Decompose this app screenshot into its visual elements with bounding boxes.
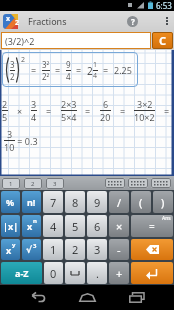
staticText: 2: [87, 64, 93, 78]
staticText: √: [26, 245, 33, 255]
button[interactable]: 9: [87, 191, 107, 213]
button[interactable]: 8: [65, 191, 85, 213]
button[interactable]: ): [153, 191, 173, 213]
staticText: 0: [50, 266, 57, 281]
staticText: =: [164, 105, 170, 117]
staticText: +: [116, 266, 123, 281]
staticText: 5×4: [61, 111, 77, 123]
staticText: 5: [72, 219, 79, 234]
staticText: 2: [21, 55, 26, 65]
button[interactable]: .: [87, 262, 107, 284]
button[interactable]: [131, 262, 173, 284]
staticText: (3/2)^2: [5, 35, 35, 47]
button[interactable]: 4: [43, 215, 63, 237]
button[interactable]: C: [152, 32, 173, 49]
staticText: =: [46, 105, 52, 117]
button[interactable]: +: [109, 262, 129, 284]
button[interactable]: √: [22, 239, 41, 260]
button[interactable]: /: [109, 191, 129, 213]
staticText: |x|: [3, 220, 19, 232]
staticText: y: [12, 241, 16, 249]
staticText: =: [85, 105, 91, 117]
button[interactable]: x: [1, 239, 20, 260]
staticText: =: [120, 105, 126, 117]
button[interactable]: (3/2)^2: [1, 32, 151, 49]
staticText: 6: [103, 98, 109, 110]
staticText: (: [139, 195, 143, 210]
staticText: /: [117, 195, 122, 210]
staticText: 1: [9, 180, 13, 188]
button[interactable]: a-Z: [1, 262, 42, 284]
staticText: n: [33, 217, 37, 225]
staticText: 9: [66, 59, 71, 70]
staticText: a-Z: [15, 267, 29, 279]
staticText: 4: [50, 219, 57, 234]
staticText: -: [117, 242, 121, 257]
staticText: 3: [7, 128, 13, 140]
staticText: 3: [10, 59, 15, 70]
button[interactable]: [131, 239, 173, 260]
staticText: 9: [94, 195, 101, 210]
staticText: Ans: [162, 215, 171, 222]
staticText: .: [96, 266, 99, 281]
button[interactable]: [70, 285, 104, 310]
button[interactable]: [166, 17, 168, 25]
button[interactable]: |x|: [1, 215, 20, 237]
staticText: x: [6, 14, 11, 24]
button[interactable]: 1: [43, 239, 63, 260]
staticText: = 0.3: [15, 135, 38, 147]
button[interactable]: [151, 178, 171, 188]
button[interactable]: 2: [65, 239, 85, 260]
button[interactable]: -: [109, 239, 129, 260]
staticText: =: [31, 64, 37, 76]
staticText: ?: [131, 16, 135, 27]
staticText: 2: [10, 71, 15, 82]
staticText: 6: [94, 219, 101, 234]
staticText: 1: [93, 60, 98, 70]
staticText: 3: [33, 242, 37, 250]
button[interactable]: %: [1, 191, 20, 213]
staticText: ×: [116, 219, 123, 234]
button[interactable]: [20, 285, 54, 310]
staticText: 2: [2, 98, 8, 110]
button[interactable]: ?: [127, 16, 138, 27]
button[interactable]: [105, 178, 125, 188]
button[interactable]: [120, 285, 154, 310]
staticText: 20: [100, 111, 111, 123]
staticText: 3: [94, 242, 101, 257]
staticText: 2×3: [61, 98, 77, 110]
button[interactable]: 7: [43, 191, 63, 213]
staticText: 2²: [42, 71, 50, 82]
button[interactable]: x: [22, 215, 41, 237]
staticText: 2: [72, 242, 79, 257]
button[interactable]: 3: [46, 178, 64, 189]
staticText: =: [55, 64, 61, 76]
staticText: =: [149, 219, 155, 233]
staticText: 3: [31, 98, 37, 110]
staticText: 7: [50, 195, 57, 210]
button[interactable]: 2: [24, 178, 42, 189]
button[interactable]: 6: [87, 215, 107, 237]
staticText: 2: [31, 180, 35, 188]
button[interactable]: [65, 262, 85, 284]
button[interactable]: 5: [65, 215, 85, 237]
button[interactable]: [128, 178, 148, 188]
staticText: 3: [53, 180, 57, 188]
button[interactable]: 0: [44, 262, 63, 284]
staticText: ×: [17, 105, 23, 117]
button[interactable]: (: [131, 191, 151, 213]
button[interactable]: =: [131, 215, 173, 237]
staticText: %: [6, 196, 15, 208]
button[interactable]: 3: [87, 239, 107, 260]
staticText: 5: [2, 111, 8, 123]
button[interactable]: 3: [2, 52, 138, 87]
button[interactable]: n!: [22, 191, 41, 213]
staticText: n!: [27, 196, 36, 208]
staticText: 8: [72, 195, 79, 210]
staticText: 10×2: [134, 111, 155, 123]
staticText: ): [161, 195, 165, 210]
staticText: x: [27, 220, 33, 232]
button[interactable]: 1: [2, 178, 20, 189]
button[interactable]: ×: [109, 215, 129, 237]
staticText: x: [6, 244, 12, 256]
